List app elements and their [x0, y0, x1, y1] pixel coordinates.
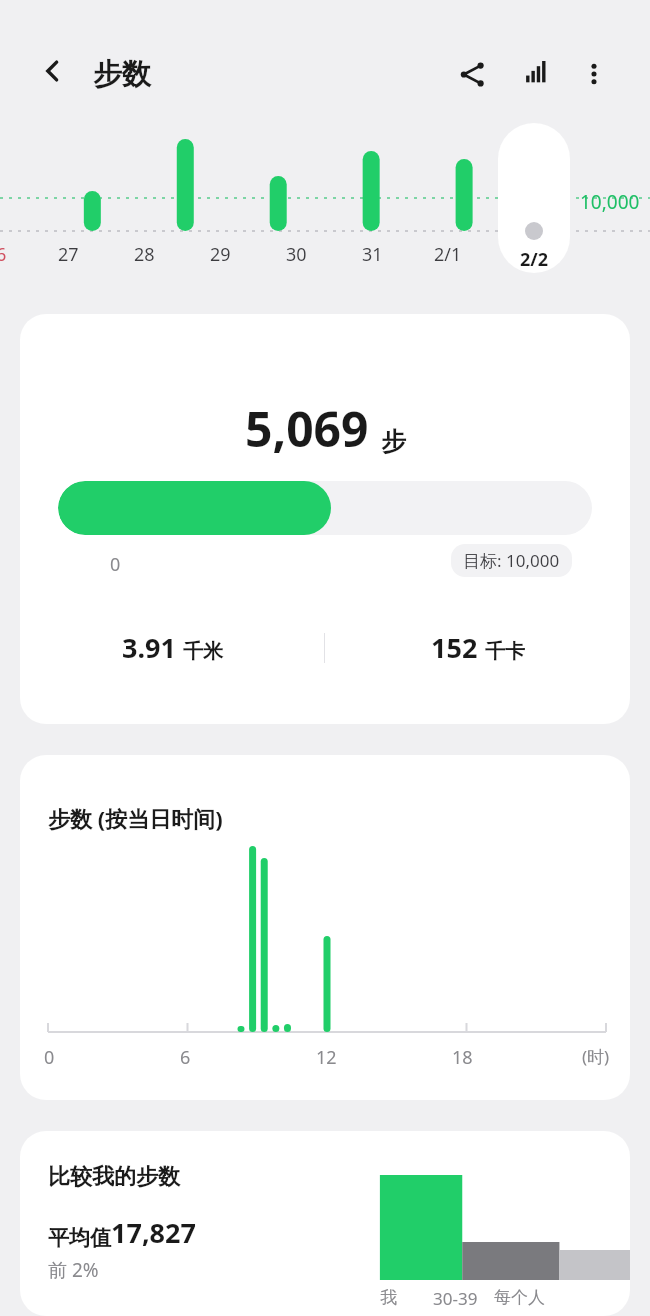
button[interactable]: 2/2: [498, 123, 570, 273]
staticText: 30-39: [433, 1287, 478, 1310]
staticText: 比较我的步数: [48, 1163, 180, 1191]
staticText: 6: [0, 242, 7, 267]
button[interactable]: 目标: 10,000: [463, 549, 560, 572]
staticText: 3.91: [122, 629, 176, 666]
staticText: 2/2: [520, 247, 549, 272]
staticText: 18: [452, 1045, 473, 1070]
button[interactable]: Back: [30, 48, 76, 94]
staticText: 31: [362, 242, 383, 267]
staticText: 17,827: [111, 1214, 196, 1251]
staticText: 步数 (按当日时间): [48, 803, 223, 833]
button[interactable]: Chart: [512, 50, 560, 98]
staticText: 千米: [183, 639, 223, 664]
staticText: 目标: 10,000: [463, 549, 560, 572]
staticText: 152: [431, 629, 478, 666]
button[interactable]: 5,069: [20, 314, 630, 724]
staticText: 0: [44, 1045, 55, 1070]
button[interactable]: 比较我的步数: [20, 1131, 630, 1316]
staticText: 27: [58, 242, 79, 267]
staticText: 千卡: [485, 639, 525, 664]
staticText: 29: [210, 242, 231, 267]
staticText: 步数: [93, 56, 151, 93]
staticText: 28: [134, 242, 155, 267]
staticText: (时): [582, 1045, 610, 1068]
button[interactable]: 步数 (按当日时间): [20, 755, 630, 1100]
staticText: 12: [316, 1045, 337, 1070]
staticText: 6: [180, 1045, 191, 1070]
staticText: 前 2%: [48, 1257, 99, 1283]
staticText: 10,000: [580, 189, 640, 215]
staticText: 30: [286, 242, 307, 267]
staticText: 平均值: [48, 1225, 111, 1251]
staticText: 2/1: [434, 242, 462, 267]
staticText: 每个人: [494, 1287, 545, 1308]
staticText: 我: [380, 1287, 397, 1308]
staticText: 步: [381, 426, 406, 457]
button[interactable]: More options: [570, 50, 618, 98]
staticText: 5,069: [245, 396, 369, 461]
staticText: 0: [110, 552, 121, 577]
button[interactable]: Share: [448, 50, 496, 98]
